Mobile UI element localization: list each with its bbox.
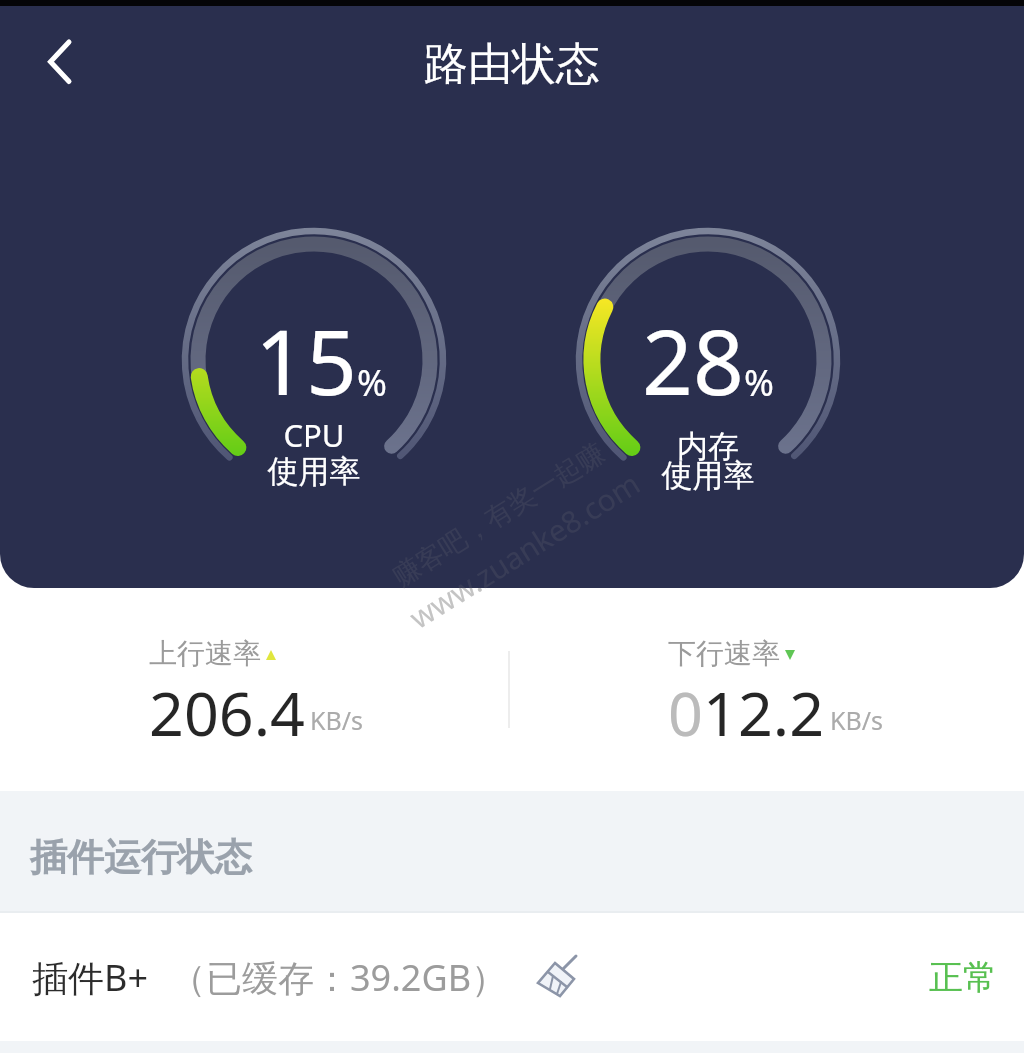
- staticText: www.zuanke8.com: [401, 462, 648, 638]
- staticText: 28: [642, 300, 744, 421]
- staticText: 12.2: [703, 671, 825, 754]
- staticText: %: [744, 358, 774, 407]
- staticText: KB/s: [830, 703, 884, 737]
- staticText: 使用率: [184, 452, 444, 491]
- staticText: 206.4: [149, 671, 305, 754]
- staticText: 内存: [578, 427, 838, 466]
- staticText: 正常: [929, 956, 997, 999]
- staticText: 0: [668, 671, 703, 754]
- staticText: 使用率: [578, 456, 838, 495]
- staticText: 15: [255, 300, 357, 421]
- staticText: 上行速率: [149, 636, 261, 671]
- staticText: %: [357, 358, 387, 407]
- staticText: www.zuanke8.com: [401, 588, 648, 638]
- button[interactable]: Clear cache: [536, 951, 588, 1003]
- staticText: KB/s: [310, 703, 364, 737]
- staticText: 插件运行状态: [30, 834, 252, 881]
- staticText: 插件B+: [32, 953, 148, 1002]
- staticText: 赚客吧，有奖一起赚: [387, 588, 611, 594]
- staticText: 下行速率: [668, 636, 780, 671]
- button[interactable]: Back: [22, 26, 94, 98]
- staticText: CPU: [184, 414, 444, 456]
- staticText: 路由状态: [0, 37, 1024, 92]
- staticText: 赚客吧，有奖一起赚: [387, 436, 611, 594]
- staticText: （已缓存：39.2GB）: [170, 953, 508, 1002]
- button[interactable]: 插件B+: [0, 913, 1024, 1041]
